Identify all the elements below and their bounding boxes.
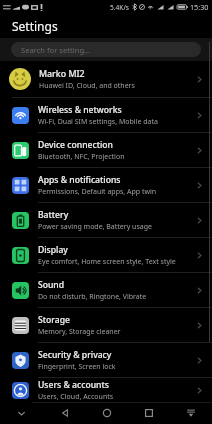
staticText: Huawei ID, Cloud, and others bbox=[39, 81, 135, 91]
staticText: Battery bbox=[38, 209, 69, 221]
button[interactable]: Apps & notifications bbox=[0, 168, 212, 202]
staticText: Memory, Storage cleaner bbox=[38, 327, 121, 337]
button[interactable]: Collapse bbox=[0, 402, 43, 424]
staticText: Users, Cloud, Accounts bbox=[38, 392, 114, 402]
button[interactable]: Hide navigation bar bbox=[170, 402, 212, 424]
button[interactable]: Display bbox=[0, 238, 212, 272]
staticText: Wi-Fi, Dual SIM settings, Mobile data bbox=[38, 117, 158, 127]
button[interactable]: Marko MI2 bbox=[0, 61, 212, 97]
staticText: Bluetooth, NFC, Projection bbox=[38, 152, 125, 162]
staticText: Users & accounts bbox=[38, 379, 109, 391]
staticText: Power saving mode, Battery usage bbox=[38, 222, 152, 232]
button[interactable]: Sound bbox=[0, 273, 212, 307]
button[interactable]: Back bbox=[43, 402, 86, 424]
staticText: 5.4K/s bbox=[110, 3, 130, 12]
staticText: 15:30 bbox=[190, 2, 209, 12]
button[interactable]: Security & privacy bbox=[0, 343, 212, 377]
staticText: Marko MI2 bbox=[39, 68, 85, 80]
staticText: Do not disturb, Ringtone, Vibrate bbox=[38, 292, 147, 302]
button[interactable]: Device connection bbox=[0, 133, 212, 167]
button[interactable]: Storage bbox=[0, 308, 212, 342]
button[interactable]: Recent apps bbox=[128, 402, 170, 424]
staticText: Search for setting... bbox=[21, 45, 91, 55]
staticText: Security & privacy bbox=[38, 349, 112, 361]
button[interactable]: Home bbox=[86, 402, 128, 424]
staticText: Permissions, Default apps, App twin bbox=[38, 187, 157, 197]
staticText: Eye comfort, Home screen style, Text sty… bbox=[38, 257, 176, 267]
staticText: Sound bbox=[38, 279, 65, 291]
button[interactable]: Wireless & networks bbox=[0, 98, 212, 132]
staticText: Fingerprint, Screen lock bbox=[38, 362, 116, 372]
button[interactable]: Users & accounts bbox=[0, 378, 212, 402]
staticText: Display bbox=[38, 244, 68, 256]
button[interactable]: Search for setting... bbox=[11, 42, 201, 57]
staticText: Apps & notifications bbox=[38, 174, 121, 186]
staticText: Settings bbox=[12, 18, 58, 34]
staticText: Wireless & networks bbox=[38, 104, 122, 116]
staticText: Device connection bbox=[38, 139, 113, 151]
button[interactable]: Battery bbox=[0, 203, 212, 237]
staticText: Storage bbox=[38, 314, 70, 326]
